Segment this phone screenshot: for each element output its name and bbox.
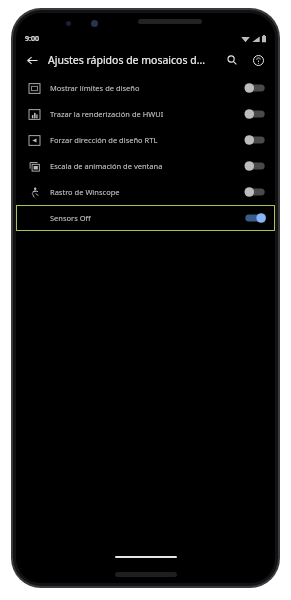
button[interactable]: Sensors Off	[16, 205, 275, 231]
staticText: Sensors Off	[50, 213, 240, 223]
button[interactable]: Search	[222, 50, 242, 70]
button[interactable]: Forzar dirección de diseño RTL	[16, 127, 275, 153]
button[interactable]: Help	[248, 50, 268, 70]
staticText: Rastro de Winscope	[50, 187, 240, 197]
staticText: Forzar dirección de diseño RTL	[50, 135, 240, 145]
button[interactable]: Back	[22, 50, 42, 70]
staticText: Mostrar límites de diseño	[50, 83, 240, 93]
button[interactable]: Rastro de Winscope	[16, 179, 275, 205]
staticText: Trazar la renderización de HWUI	[50, 109, 240, 119]
button[interactable]: Escala de animación de ventana	[16, 153, 275, 179]
button[interactable]: Mostrar límites de diseño	[16, 75, 275, 101]
staticText: Escala de animación de ventana	[50, 161, 240, 171]
staticText: Ajustes rápidos de mosaicos d…	[48, 53, 222, 67]
button[interactable]: Trazar la renderización de HWUI	[16, 101, 275, 127]
staticText: 9:00	[25, 34, 39, 44]
